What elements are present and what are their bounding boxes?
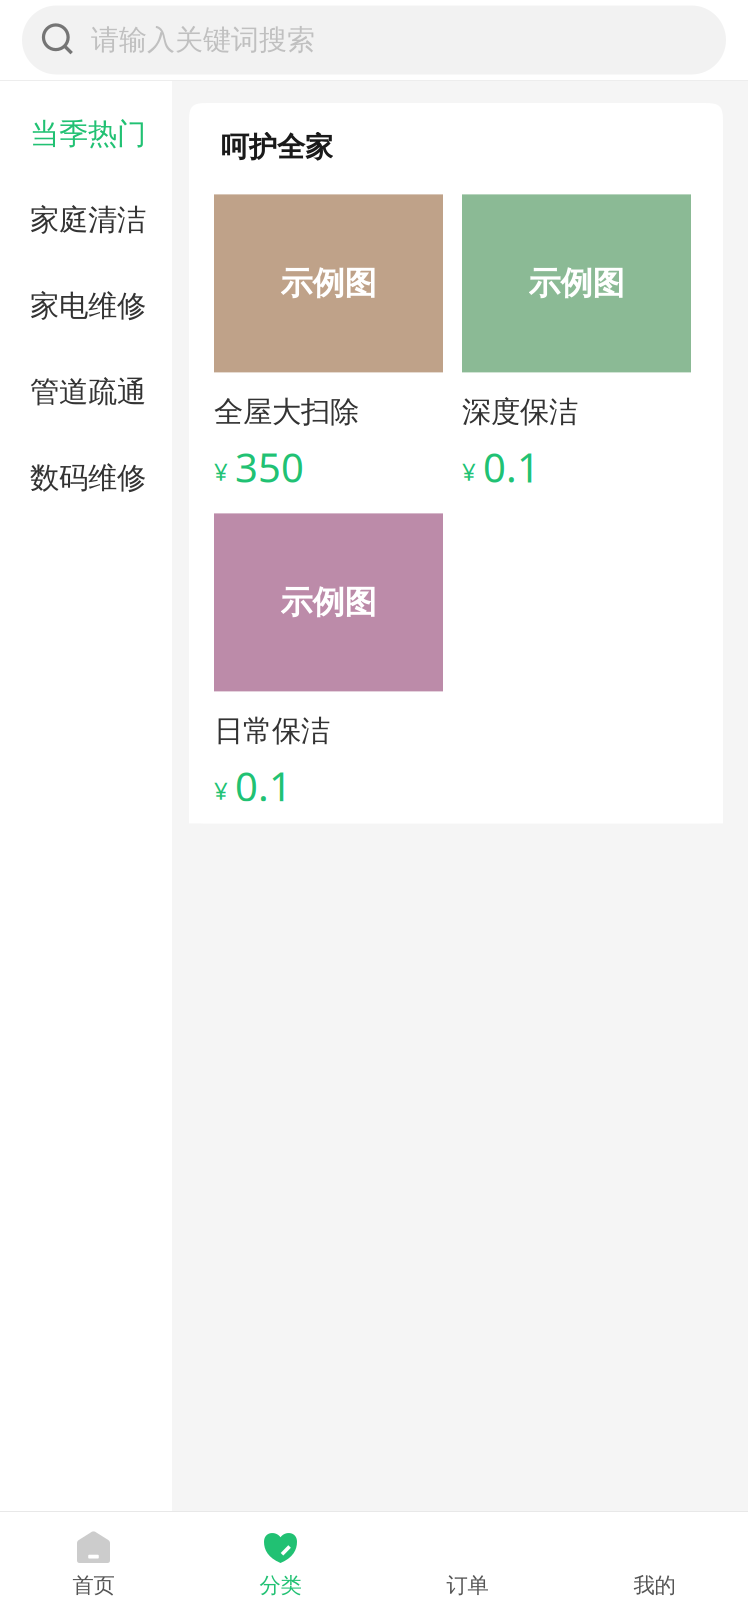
staticText: 我的 [633, 1572, 675, 1599]
staticText: 首页 [72, 1572, 114, 1599]
button[interactable]: 示例图 [214, 194, 443, 482]
button[interactable]: 家庭清洁 [0, 177, 202, 263]
button[interactable]: 当季热门 [0, 91, 202, 177]
staticText: ¥ [462, 456, 476, 487]
staticText: 管道疏通 [30, 374, 146, 410]
button[interactable]: 数码维修 [0, 435, 202, 521]
button[interactable]: 家电维修 [0, 263, 202, 349]
staticText: 示例图 [528, 264, 624, 303]
staticText: 日常保洁 [214, 713, 330, 749]
button[interactable]: 订单 [374, 1512, 561, 1612]
button[interactable]: 示例图 [214, 513, 443, 801]
staticText: 呵护全家 [221, 130, 333, 164]
staticText: 家电维修 [30, 288, 146, 324]
staticText: 350 [235, 440, 304, 493]
staticText: ¥ [214, 456, 228, 487]
button[interactable]: 首页 [0, 1512, 187, 1612]
staticText: 订单 [446, 1572, 488, 1599]
staticText: 示例图 [280, 583, 376, 622]
staticText: 请输入关键词搜索 [91, 23, 315, 57]
staticText: 0.1 [483, 440, 540, 493]
staticText: 当季热门 [30, 116, 146, 152]
staticText: 数码维修 [30, 460, 146, 496]
staticText: ¥ [214, 775, 228, 806]
button[interactable]: 示例图 [462, 194, 691, 482]
button[interactable]: 管道疏通 [0, 349, 202, 435]
staticText: 全屋大扫除 [214, 394, 359, 430]
staticText: 0.1 [235, 759, 292, 812]
staticText: 示例图 [280, 264, 376, 303]
staticText: 家庭清洁 [30, 202, 146, 238]
button[interactable]: 搜索 [22, 5, 726, 74]
staticText: 分类 [259, 1572, 301, 1599]
staticText: 深度保洁 [462, 394, 578, 430]
button[interactable]: 我的 [561, 1512, 748, 1612]
button[interactable]: 分类 [187, 1512, 374, 1612]
